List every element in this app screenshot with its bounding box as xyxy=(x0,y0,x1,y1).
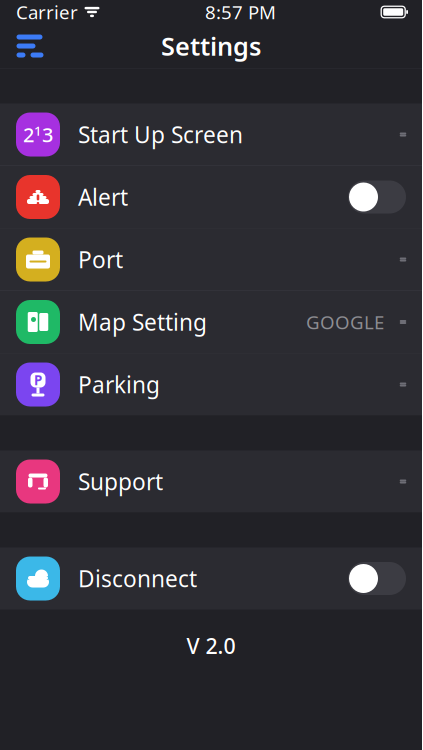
staticText: 3 xyxy=(42,121,53,148)
button[interactable]: P xyxy=(0,353,422,415)
button[interactable]: 2 xyxy=(0,103,422,166)
staticText: Start Up Screen xyxy=(78,119,243,149)
staticText: 1 xyxy=(34,122,42,139)
staticText: Carrier xyxy=(16,0,78,24)
staticText: Map Setting xyxy=(78,307,207,337)
staticText: V 2.0 xyxy=(186,631,235,660)
button[interactable]: Alert xyxy=(0,166,422,228)
staticText: Settings xyxy=(161,29,261,63)
staticText: Support xyxy=(78,466,163,496)
staticText: 2 xyxy=(23,121,34,148)
button[interactable]: Disconnect xyxy=(0,547,422,609)
staticText: Disconnect xyxy=(78,563,197,593)
staticText: Port xyxy=(78,244,123,274)
staticText: Alert xyxy=(78,182,128,212)
button[interactable]: Support xyxy=(0,450,422,512)
button[interactable]: Menu xyxy=(8,24,52,68)
button[interactable]: Port xyxy=(0,228,422,291)
button[interactable]: Map Setting xyxy=(0,291,422,353)
staticText: GOOGLE xyxy=(306,310,384,334)
staticText: 8:57 PM xyxy=(205,0,276,24)
staticText: P xyxy=(34,371,42,389)
staticText: Parking xyxy=(78,369,160,399)
